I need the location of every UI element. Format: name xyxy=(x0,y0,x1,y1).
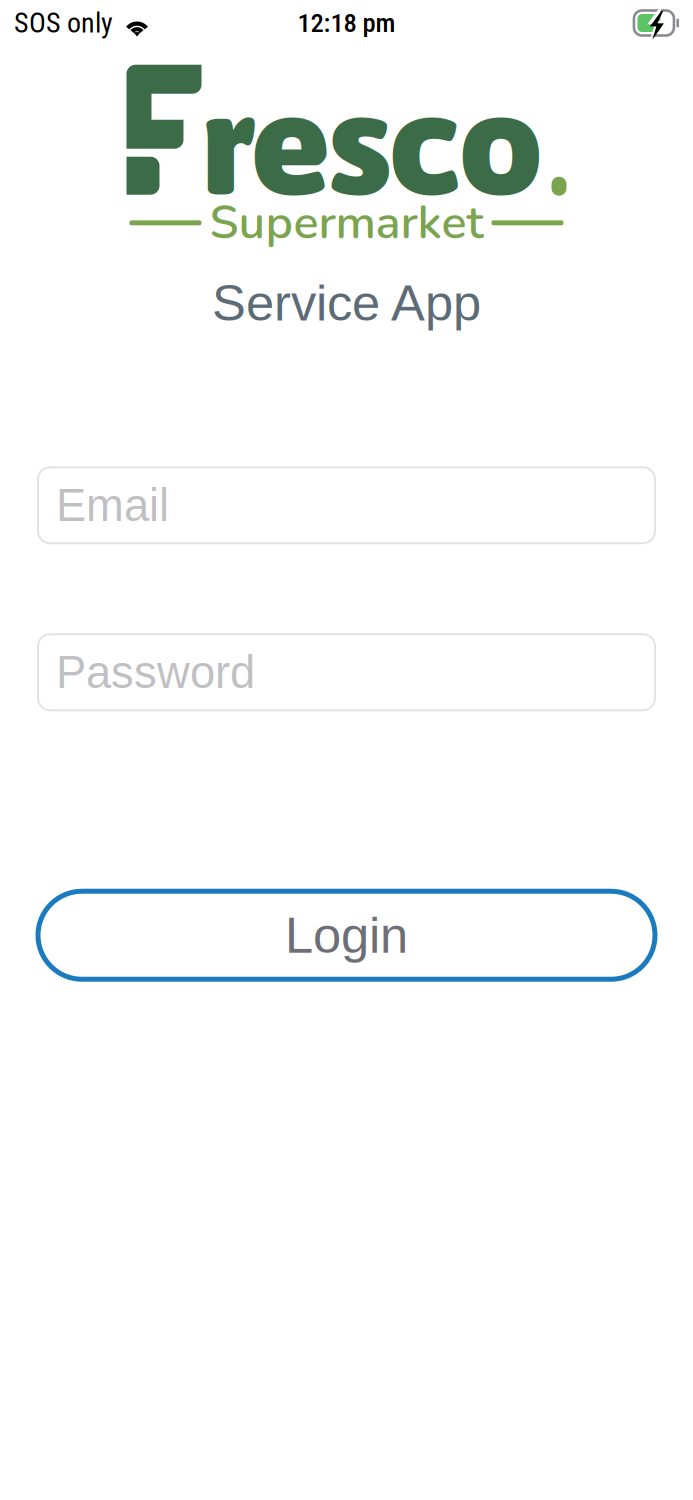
staticText: Service App xyxy=(212,275,481,331)
staticText: resco xyxy=(201,59,542,225)
staticText: Supermarket xyxy=(209,191,483,255)
staticText: Login xyxy=(285,907,408,964)
staticText: Password xyxy=(56,647,255,697)
staticText: Email xyxy=(56,480,169,530)
staticText: 12:18 pm xyxy=(297,7,395,39)
button[interactable]: Login xyxy=(38,891,655,979)
staticText: SOS only xyxy=(14,7,113,39)
